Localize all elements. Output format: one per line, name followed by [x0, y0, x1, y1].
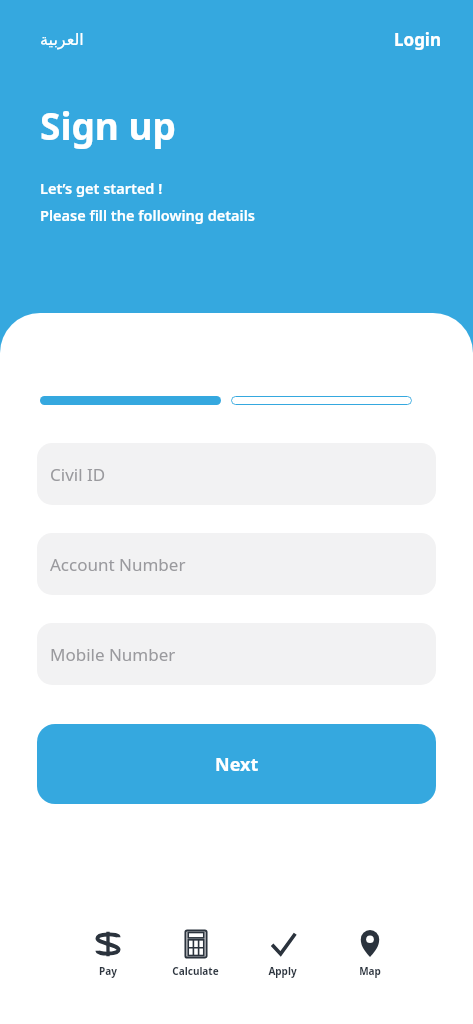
staticText: Sign up [40, 100, 176, 150]
staticText: Next [215, 752, 259, 777]
button[interactable]: العربية [40, 28, 84, 51]
staticText: Map [359, 964, 381, 978]
staticText: Let’s get started ! [40, 178, 163, 198]
staticText: Login [394, 28, 442, 51]
button[interactable]: Apply [247, 918, 318, 990]
button[interactable]: Mobile Number [37, 623, 436, 685]
button[interactable]: Next [37, 724, 436, 804]
staticText: Civil ID [50, 463, 106, 486]
staticText: Calculate [172, 964, 219, 978]
button[interactable]: Map [334, 918, 405, 990]
staticText: Pay [99, 964, 117, 978]
button[interactable]: Civil ID [37, 443, 436, 505]
button[interactable]: Account Number [37, 533, 436, 595]
staticText: Account Number [50, 553, 186, 576]
staticText: Apply [268, 964, 297, 978]
button[interactable]: Pay [72, 918, 144, 990]
staticText: العربية [40, 30, 84, 49]
staticText: Please fill the following details [40, 205, 255, 225]
button[interactable]: Login [394, 26, 442, 53]
staticText: Mobile Number [50, 643, 176, 666]
button[interactable]: Calculate [160, 918, 231, 990]
